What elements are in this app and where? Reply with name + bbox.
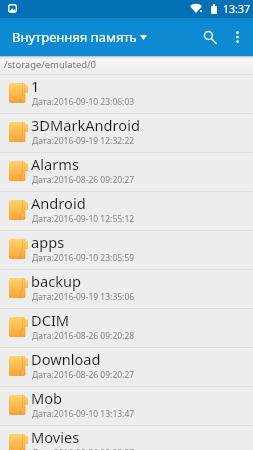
staticText: /storage/emulated/0 [4,58,96,71]
staticText: Дата:2016-08-26 09:20:27 [32,447,135,450]
button[interactable]: Movies [0,426,253,450]
staticText: backup [31,271,81,291]
staticText: Movies [31,427,80,447]
staticText: DCIM [31,310,70,330]
staticText: Alarms [31,154,79,174]
button[interactable]: Alarms [0,153,253,192]
button[interactable]: Mob [0,387,253,426]
staticText: Download [31,349,101,369]
button[interactable]: Внутренняя память [6,18,153,56]
staticText: Дата:2016-09-19 13:35:06 [32,291,135,303]
staticText: 13:37 [223,2,251,16]
staticText: Дата:2016-09-10 13:13:47 [32,408,135,420]
button[interactable]: 3DMarkAndroid [0,114,253,153]
staticText: Android [31,193,86,213]
staticText: Внутренняя память [12,28,137,46]
staticText: Дата:2016-09-19 12:32:22 [32,135,135,147]
button[interactable]: apps [0,231,253,270]
button[interactable]: DCIM [0,309,253,348]
staticText: Дата:2016-08-26 09:20:27 [32,369,135,381]
staticText: Дата:2016-09-10 23:05:59 [32,252,135,264]
button[interactable]: Search [196,18,220,56]
staticText: 3DMarkAndroid [31,115,140,135]
button[interactable]: backup [0,270,253,309]
staticText: apps [31,232,65,252]
button[interactable]: Android [0,192,253,231]
staticText: Дата:2016-09-10 23:06:03 [32,96,135,108]
staticText: Дата:2016-08-26 09:20:27 [32,174,135,186]
button[interactable]: 1 [0,75,253,114]
button[interactable]: Download [0,348,253,387]
staticText: Дата:2016-09-10 12:55:12 [32,213,135,225]
staticText: Дата:2016-08-26 09:20:28 [32,330,135,342]
staticText: Mob [31,388,63,408]
staticText: 1 [31,76,40,96]
button[interactable]: More options [228,18,248,56]
